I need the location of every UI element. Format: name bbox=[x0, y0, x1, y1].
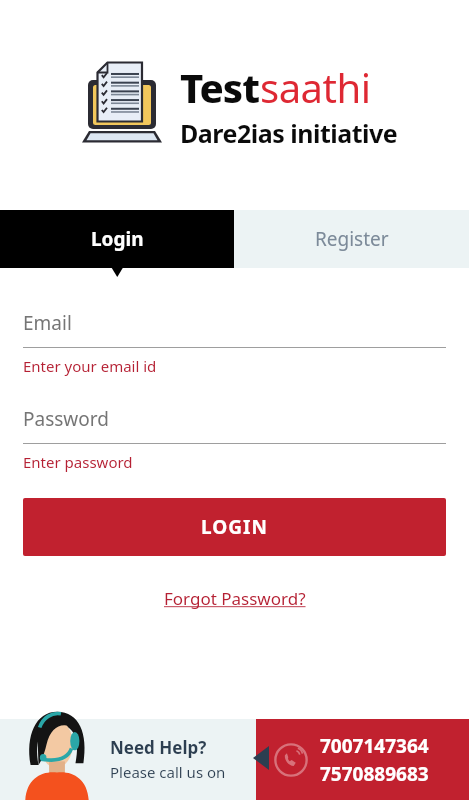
staticText: Enter password bbox=[23, 452, 133, 472]
staticText: Email bbox=[23, 310, 72, 336]
button[interactable]: Register bbox=[234, 210, 469, 268]
button[interactable]: Login bbox=[0, 210, 234, 268]
staticText: Register bbox=[315, 226, 389, 252]
staticText: saathi bbox=[260, 60, 371, 114]
staticText: Enter your email id bbox=[23, 356, 157, 376]
staticText: Login bbox=[91, 226, 144, 252]
staticText: Please call us on bbox=[110, 762, 226, 782]
staticText: Dare2ias initiative bbox=[180, 116, 398, 150]
staticText: Forgot Password? bbox=[164, 587, 306, 610]
button[interactable]: Call support bbox=[256, 719, 469, 800]
button[interactable]: Forgot Password? bbox=[160, 583, 310, 614]
staticText: Test bbox=[180, 60, 260, 114]
staticText: Password bbox=[23, 406, 109, 432]
staticText: 7570889683 bbox=[320, 761, 429, 787]
other: Call support bbox=[274, 743, 308, 777]
button[interactable]: LOGIN bbox=[23, 498, 446, 556]
staticText: Need Help? bbox=[110, 736, 207, 759]
staticText: 7007147364 bbox=[320, 733, 429, 759]
staticText: LOGIN bbox=[201, 514, 268, 540]
